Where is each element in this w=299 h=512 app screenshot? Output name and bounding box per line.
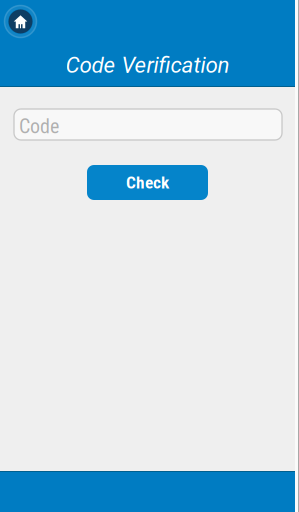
button[interactable]: Home	[0, 0, 41, 43]
staticText: Check	[126, 172, 169, 193]
button[interactable]: Check	[87, 165, 208, 200]
staticText: Code Verification	[65, 52, 229, 78]
staticText: Code	[19, 115, 59, 138]
